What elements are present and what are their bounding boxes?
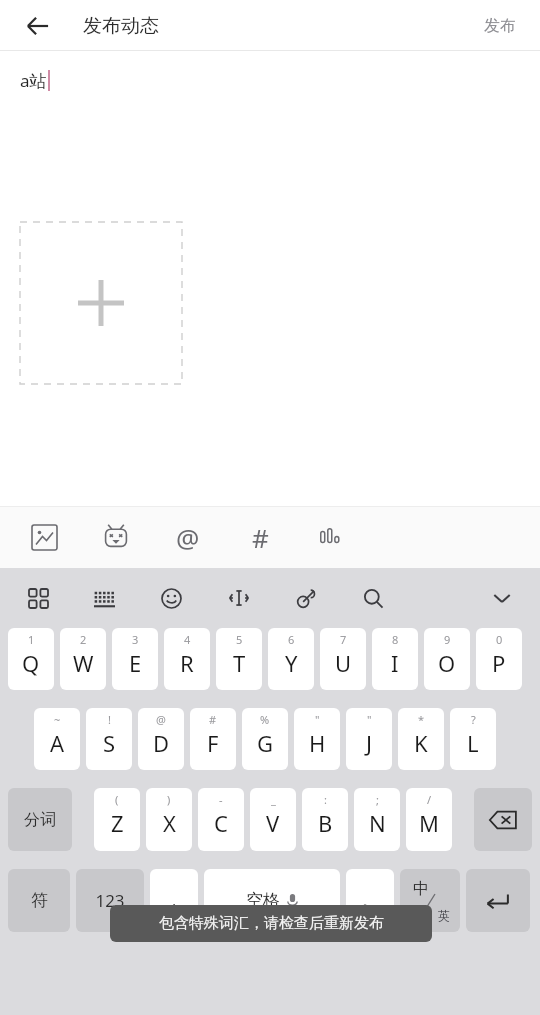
button[interactable]: Enter	[466, 869, 530, 932]
staticText: H	[309, 728, 326, 758]
button[interactable]: "	[346, 708, 392, 770]
button[interactable]: 9	[424, 628, 470, 690]
staticText: Z	[111, 808, 124, 838]
staticText: O	[438, 648, 456, 678]
staticText: 123	[95, 889, 125, 912]
staticText: a站	[20, 69, 47, 92]
button[interactable]: Add image	[20, 222, 182, 384]
staticText: "	[367, 712, 372, 727]
button[interactable]: Search	[355, 580, 391, 616]
staticText: /	[427, 792, 432, 807]
staticText: 英	[438, 908, 450, 923]
button[interactable]: Mention	[171, 520, 205, 554]
staticText: 2	[80, 632, 87, 647]
button[interactable]: 中	[400, 869, 460, 932]
staticText: E	[129, 648, 142, 678]
button[interactable]: @	[138, 708, 184, 770]
staticText: J	[366, 728, 373, 758]
staticText: 。	[362, 891, 378, 911]
staticText: 5	[236, 632, 243, 647]
staticText: #	[209, 712, 217, 727]
button[interactable]: Move cursor	[221, 580, 257, 616]
staticText: (	[115, 792, 119, 807]
staticText: _	[271, 792, 276, 807]
button[interactable]: 5	[216, 628, 262, 690]
button[interactable]: (	[94, 788, 140, 851]
staticText: ，	[166, 891, 182, 911]
staticText: @	[156, 712, 166, 727]
button[interactable]: ~	[34, 708, 80, 770]
staticText: 中	[413, 879, 429, 899]
staticText: %	[260, 712, 270, 727]
staticText: ;	[376, 792, 379, 807]
staticText: !	[108, 712, 111, 727]
staticText: 1	[28, 632, 35, 647]
button[interactable]: "	[294, 708, 340, 770]
button[interactable]: -	[198, 788, 244, 851]
button[interactable]: %	[242, 708, 288, 770]
button[interactable]: 2	[60, 628, 106, 690]
staticText: 包含特殊词汇，请检查后重新发布	[159, 914, 384, 933]
staticText: Y	[285, 648, 298, 678]
button[interactable]: 3	[112, 628, 158, 690]
button[interactable]: Emoji keyboard	[153, 580, 189, 616]
button[interactable]: 0	[476, 628, 522, 690]
staticText: 8	[392, 632, 399, 647]
button[interactable]: Topic	[243, 520, 277, 554]
button[interactable]: ;	[354, 788, 400, 851]
button[interactable]: Emoji	[99, 520, 133, 554]
staticText: 4	[184, 632, 191, 647]
button[interactable]: Keyboard layouts	[20, 580, 56, 616]
button[interactable]: Back	[14, 2, 62, 50]
staticText: 符	[31, 890, 48, 911]
staticText: Q	[22, 648, 40, 678]
staticText: -	[219, 792, 223, 807]
staticText: 发布动态	[83, 14, 159, 38]
button[interactable]: 空格	[204, 869, 340, 932]
staticText: 空格	[246, 890, 280, 911]
staticText: @	[176, 520, 200, 554]
button[interactable]: 1	[8, 628, 54, 690]
button[interactable]: _	[250, 788, 296, 851]
button[interactable]: Clipboard	[288, 580, 324, 616]
button[interactable]: 符	[8, 869, 70, 932]
staticText: B	[318, 808, 333, 838]
button[interactable]: Backspace	[474, 788, 532, 851]
button[interactable]: 6	[268, 628, 314, 690]
button[interactable]: 4	[164, 628, 210, 690]
staticText: U	[335, 648, 352, 678]
staticText: 发布	[484, 16, 516, 36]
staticText: W	[73, 648, 94, 678]
button[interactable]: ，	[150, 869, 198, 932]
button[interactable]: 。	[346, 869, 394, 932]
staticText: N	[369, 808, 386, 838]
button[interactable]: :	[302, 788, 348, 851]
button[interactable]: 发布	[484, 16, 516, 36]
button[interactable]: Keyboard	[86, 580, 122, 616]
staticText: )	[167, 792, 171, 807]
staticText: V	[266, 808, 280, 838]
button[interactable]: 7	[320, 628, 366, 690]
button[interactable]: /	[406, 788, 452, 851]
staticText: L	[467, 728, 479, 758]
button[interactable]: Add picture	[27, 520, 61, 554]
button[interactable]: 分词	[8, 788, 72, 851]
staticText: 3	[132, 632, 139, 647]
staticText: 6	[288, 632, 295, 647]
button[interactable]: Vote	[313, 520, 347, 554]
staticText: G	[257, 728, 274, 758]
staticText: T	[233, 648, 246, 678]
button[interactable]: Hide keyboard	[484, 580, 520, 616]
button[interactable]: !	[86, 708, 132, 770]
staticText: R	[180, 648, 194, 678]
staticText: A	[50, 728, 65, 758]
staticText: C	[214, 808, 228, 838]
button[interactable]: 8	[372, 628, 418, 690]
staticText: D	[153, 728, 170, 758]
button[interactable]: *	[398, 708, 444, 770]
button[interactable]: ?	[450, 708, 496, 770]
button[interactable]: )	[146, 788, 192, 851]
button[interactable]: #	[190, 708, 236, 770]
button[interactable]: 123	[76, 869, 144, 932]
staticText: *	[418, 712, 425, 727]
